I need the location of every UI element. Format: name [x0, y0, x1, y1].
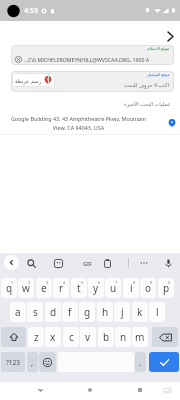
staticText: c	[69, 330, 74, 344]
staticText: 2	[28, 280, 31, 285]
button[interactable]: Back	[33, 383, 47, 397]
button[interactable]: k	[132, 302, 148, 322]
staticText: r	[59, 281, 64, 295]
button[interactable]: h	[97, 302, 113, 322]
staticText: l	[156, 305, 159, 319]
button[interactable]: Back	[4, 255, 19, 270]
staticText: z	[34, 330, 39, 344]
button[interactable]: GIF	[80, 256, 94, 270]
staticText: t	[77, 281, 81, 295]
button[interactable]: d	[45, 302, 61, 322]
button[interactable]: Recents	[133, 383, 147, 397]
staticText: .	[139, 357, 142, 368]
button[interactable]: Google Building 43, 43 Amphitheatre Pkwy…	[0, 112, 180, 134]
staticText: 6	[98, 280, 101, 285]
button[interactable]: Backspace	[152, 327, 178, 347]
staticText: ?123	[6, 358, 20, 367]
button[interactable]: z	[28, 327, 44, 347]
button[interactable]: Emoji	[39, 352, 56, 372]
staticText: e	[41, 281, 47, 295]
staticText: u	[110, 281, 117, 295]
staticText: w	[22, 281, 30, 295]
button[interactable]: b	[98, 327, 114, 347]
button[interactable]: e	[36, 278, 52, 298]
staticText: رسم خريطة	[15, 77, 42, 84]
staticText: 3	[46, 280, 49, 285]
button[interactable]: l	[149, 302, 165, 322]
staticText: 9	[150, 280, 153, 285]
staticText: 0	[168, 280, 171, 285]
staticText: g	[84, 305, 91, 319]
button[interactable]: n	[115, 327, 131, 347]
staticText: v	[85, 330, 91, 344]
staticText: s	[33, 305, 38, 319]
staticText: q	[6, 281, 13, 295]
staticText: n	[120, 330, 127, 344]
staticText: a	[15, 305, 21, 319]
button[interactable]: c	[63, 327, 79, 347]
button[interactable]: ,	[27, 352, 38, 372]
staticText: b	[103, 330, 110, 344]
button[interactable]: o	[140, 278, 156, 298]
button[interactable]: v	[80, 327, 96, 347]
staticText: y	[93, 281, 99, 295]
staticText: i	[130, 281, 133, 295]
button[interactable]: رسم خريطة	[12, 73, 55, 87]
staticText: d	[50, 305, 57, 319]
button[interactable]: r	[53, 278, 69, 298]
staticText: k	[137, 305, 143, 319]
staticText: 7	[115, 280, 118, 285]
staticText: 4	[63, 280, 66, 285]
button[interactable]: Back	[161, 27, 179, 45]
button[interactable]: .	[135, 352, 146, 372]
staticText: 8	[133, 280, 136, 285]
staticText: موقع التوصيل	[147, 72, 170, 77]
staticText: 5	[81, 280, 84, 285]
button[interactable]: Shift	[1, 327, 26, 347]
button[interactable]: i	[123, 278, 139, 298]
staticText: 4:59	[24, 6, 38, 16]
button[interactable]: Home	[83, 383, 97, 397]
button[interactable]: u	[105, 278, 121, 298]
button[interactable]: Search	[24, 256, 38, 270]
button[interactable]: g	[79, 302, 95, 322]
staticText: ...C\0.MICHELEROMEYNHILL@WVSCAA.ORG, 160…	[24, 56, 150, 63]
button[interactable]: ?123	[1, 352, 25, 372]
button[interactable]: t	[71, 278, 87, 298]
button[interactable]: Clipboard	[100, 256, 114, 270]
staticText: اكتب 4 حروف للبحث	[124, 81, 169, 88]
button[interactable]: p	[158, 278, 174, 298]
button[interactable]: Switch keyboard	[160, 383, 174, 397]
button[interactable]: f	[62, 302, 78, 322]
button[interactable]: y	[88, 278, 104, 298]
staticText: ,	[31, 357, 34, 368]
button[interactable]: w	[18, 278, 34, 298]
button[interactable]: More options	[137, 256, 151, 270]
button[interactable]: m	[132, 327, 148, 347]
button[interactable]: Stickers	[51, 256, 65, 270]
staticText: Google Building 43, 43 Amphitheatre Pkwy…	[7, 115, 150, 131]
staticText: عمليات البحث الأخيرة	[124, 100, 171, 107]
staticText: f	[68, 305, 72, 319]
staticText: موقع الاستلام	[147, 46, 170, 51]
staticText: p	[163, 281, 170, 295]
staticText: GIF	[83, 260, 92, 267]
button[interactable]: a	[10, 302, 26, 322]
staticText: h	[102, 305, 109, 319]
staticText: m	[135, 330, 145, 344]
staticText: 1	[11, 280, 14, 285]
button[interactable]: موقع الاستلام	[11, 45, 174, 65]
staticText: o	[145, 281, 152, 295]
button[interactable]: Voice input	[161, 256, 175, 270]
button[interactable]: j	[114, 302, 130, 322]
button[interactable]: q	[1, 278, 17, 298]
button[interactable]: Enter	[149, 352, 179, 372]
button[interactable]: s	[27, 302, 43, 322]
button[interactable]: x	[45, 327, 61, 347]
staticText: x	[50, 330, 56, 344]
staticText: j	[121, 305, 124, 319]
button[interactable]: موقع التوصيل	[11, 71, 174, 92]
